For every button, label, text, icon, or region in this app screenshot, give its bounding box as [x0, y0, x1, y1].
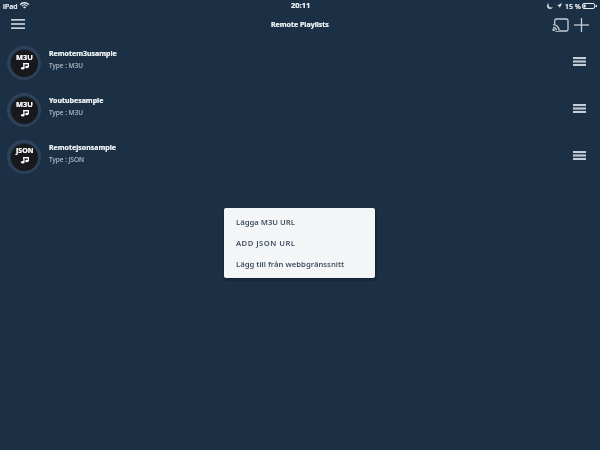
button[interactable]: Reorder Remotejsonsample — [567, 143, 591, 167]
button[interactable]: Reorder Youtubesample — [567, 96, 591, 120]
button[interactable]: Lägga M3U URL — [224, 217, 375, 238]
staticText: Lägga M3U URL — [236, 217, 295, 227]
staticText: M3U — [16, 52, 33, 62]
staticText: ADD JSON URL — [236, 238, 296, 248]
button[interactable]: M3U — [0, 87, 600, 134]
staticText: Remote Playlists — [271, 20, 329, 30]
staticText: JSON — [16, 146, 34, 156]
button[interactable]: JSON — [0, 134, 600, 181]
button[interactable]: Add playlist — [569, 13, 593, 37]
staticText: iPad — [3, 2, 18, 12]
staticText: Youtubesample — [49, 96, 104, 106]
staticText: Type : M3U — [49, 61, 83, 70]
staticText: Remotem3usample — [49, 49, 117, 59]
staticText: M3U — [16, 99, 33, 109]
staticText: Lägg till från webbgränssnitt — [236, 259, 345, 269]
staticText: Type : M3U — [49, 108, 83, 117]
button[interactable]: Navigation menu — [6, 12, 30, 36]
button[interactable]: M3U — [0, 40, 600, 87]
staticText: 15 % — [565, 2, 581, 12]
staticText: 20:11 — [291, 0, 311, 10]
staticText: Type : JSON — [49, 155, 84, 164]
staticText: Remotejsonsample — [49, 143, 116, 153]
button[interactable]: Lägg till från webbgränssnitt — [224, 259, 375, 278]
button[interactable]: ADD JSON URL — [224, 238, 375, 259]
button[interactable]: Reorder Remotem3usample — [567, 49, 591, 73]
button[interactable]: Cast to device — [548, 13, 572, 37]
